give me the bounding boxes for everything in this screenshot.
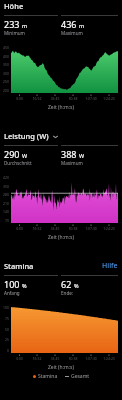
staticText: 33:45 (46, 96, 64, 101)
staticText: Zeit (h:m:s) (48, 104, 74, 111)
staticText: Leistung (W) (4, 131, 49, 141)
staticText: 140 (3, 209, 9, 214)
staticText: 450 (3, 45, 9, 50)
staticText: 0:00 (11, 226, 28, 231)
staticText: 25 (5, 337, 9, 342)
staticText: 62 (61, 278, 72, 290)
staticText: 50:38 (64, 226, 82, 231)
staticText: 75 (5, 316, 9, 321)
staticText: m (22, 22, 28, 29)
staticText: 300 (3, 71, 9, 76)
staticText: 16:52 (28, 96, 46, 101)
staticText: Maximum (61, 160, 83, 166)
staticText: 233 (4, 18, 20, 30)
staticText: Hilfe (102, 261, 118, 271)
staticText: 0:00 (11, 356, 28, 361)
staticText: Maximum (61, 30, 83, 36)
staticText: W (22, 152, 28, 159)
staticText: 100 (3, 305, 9, 310)
staticText: 350 (3, 62, 9, 67)
staticText: 280 (3, 192, 9, 197)
staticText: Minimum (4, 30, 25, 36)
staticText: % (74, 282, 79, 289)
staticText: Anfang (4, 290, 20, 296)
staticText: m (79, 22, 85, 29)
staticText: % (22, 282, 27, 289)
staticText: 1:07:30 (82, 356, 100, 361)
staticText: 200 (3, 88, 9, 93)
staticText: Zeit (h:m:s) (48, 234, 74, 241)
staticText: 400 (3, 54, 9, 59)
staticText: 250 (3, 79, 9, 84)
staticText: 1:07:30 (82, 96, 100, 101)
staticText: 33:45 (46, 226, 64, 231)
button[interactable]: Hilfe (102, 261, 118, 271)
staticText: Gesamt (71, 373, 90, 380)
staticText: 0 (7, 348, 9, 353)
staticText: 33:45 (46, 356, 64, 361)
button[interactable]: Höhe (4, 1, 118, 11)
staticText: W (79, 152, 85, 159)
staticText: 436 (61, 18, 77, 30)
staticText: Höhe (4, 1, 24, 11)
staticText: 50:38 (64, 356, 82, 361)
staticText: 50 (5, 327, 9, 332)
staticText: 210 (3, 201, 9, 206)
staticText: 50:38 (64, 96, 82, 101)
staticText: 100 (4, 278, 20, 290)
staticText: 1:24:23 (100, 356, 118, 361)
staticText: 350 (3, 184, 9, 189)
staticText: Stamina (38, 373, 58, 380)
staticText: 290 (4, 148, 20, 160)
staticText: 1:07:30 (82, 226, 100, 231)
staticText: 16:52 (28, 226, 46, 231)
staticText: 1:24:23 (100, 226, 118, 231)
staticText: 1:24:23 (100, 96, 118, 101)
staticText: 388 (61, 148, 77, 160)
staticText: 16:52 (28, 356, 46, 361)
staticText: Zeit (h:m:s) (48, 364, 74, 371)
button[interactable]: Leistung (W) (4, 131, 118, 141)
staticText: Stamina (4, 261, 34, 271)
staticText: 0:00 (11, 96, 28, 101)
staticText: 420 (3, 175, 9, 180)
staticText: 70 (5, 218, 9, 223)
staticText: Ende: (61, 290, 74, 296)
staticText: Durchschnitt (4, 160, 32, 166)
other: Metrik auswählen (52, 133, 59, 140)
